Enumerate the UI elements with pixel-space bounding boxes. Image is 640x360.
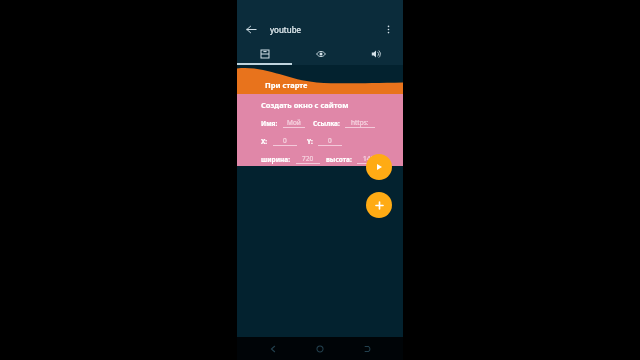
staticText: Ссылка: [313,119,340,128]
staticText: X: [261,137,268,146]
button[interactable]: 720 [296,154,320,164]
staticText: 720 [302,154,314,163]
staticText: 1480 [363,154,378,163]
button[interactable]: Sound tab [348,42,403,65]
staticText: ширина: [261,155,291,164]
staticText: 0 [283,136,287,145]
button[interactable]: Add [366,192,392,218]
button[interactable]: More options [380,21,397,38]
staticText: https: [351,118,369,127]
button[interactable]: 0 [318,136,342,146]
staticText: Имя: [261,119,278,128]
staticText: высота: [326,155,352,164]
button[interactable]: Home [309,338,331,360]
staticText: При старте [265,80,308,90]
staticText: Мой [287,118,301,127]
button[interactable]: 0 [273,136,297,146]
button[interactable]: https: [345,118,375,128]
button[interactable]: Run [366,154,392,180]
button[interactable]: Recents [356,338,378,360]
button[interactable]: 1480 [357,154,383,164]
staticText: 0 [328,136,332,145]
button[interactable]: Windows tab [237,42,293,65]
staticText: Y: [307,137,313,146]
staticText: youtube [270,24,302,35]
button[interactable]: Preview tab [293,42,348,65]
staticText: Создать окно с сайтом [261,100,349,110]
button[interactable]: Back [262,338,284,360]
button[interactable]: Back [243,21,260,38]
button[interactable]: Мой [283,118,305,128]
